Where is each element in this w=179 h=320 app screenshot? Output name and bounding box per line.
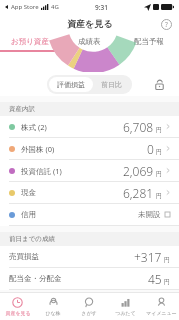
button[interactable]: つみたて [107,293,143,320]
staticText: 未開設 [138,210,161,219]
staticText: 資産を見る [5,310,31,316]
button[interactable]: 配当金・分配金 [0,268,179,290]
button[interactable]: 外国株 (0) [0,138,179,160]
button[interactable]: さがす [71,293,107,320]
staticText: 円 [156,170,162,178]
button[interactable]: 株式 (2) [0,116,179,138]
button[interactable]: 信用 [0,204,179,226]
staticText: 0 [147,141,154,157]
staticText: さがす [81,310,97,316]
staticText: 売買損益 [9,252,39,261]
staticText: 配当予報 [134,37,164,46]
staticText: 円 [156,126,162,134]
staticText: +317 [134,249,162,265]
button[interactable]: ひな株 [35,293,71,320]
staticText: マイメニュー [146,310,177,316]
staticText: 資産を見る [67,18,113,29]
button[interactable]: マイメニュー [143,293,179,320]
button[interactable]: 投資信託 (1) [0,160,179,182]
staticText: 信用 [21,210,36,219]
button[interactable]: お預り資産 [0,33,59,50]
staticText: お預り資産 [11,37,49,46]
button[interactable]: 表示ロック [151,76,167,92]
staticText: 成績表 [78,37,101,46]
staticText: 外国株 (0) [21,144,55,154]
staticText: 資産内訳 [9,105,35,113]
button[interactable]: 成績表 [59,33,119,50]
staticText: 6,708 [123,119,154,135]
button[interactable]: 現金 [0,182,179,204]
staticText: ? [165,20,168,29]
staticText: 9:31 [95,3,108,12]
button[interactable]: 配当予報 [119,33,179,50]
staticText: 2,069 [123,163,154,179]
staticText: 配当金・分配金 [9,274,62,283]
staticText: 45 [148,271,162,287]
staticText: つみたて [115,310,136,316]
button[interactable]: 評価損益 [57,80,85,89]
staticText: 株式 (2) [21,122,47,132]
staticText: 現金 [21,188,36,197]
staticText: ひな株 [45,310,61,316]
staticText: 円 [156,192,162,200]
button[interactable]: 資産を見る [0,293,35,320]
staticText: 投資信託 (1) [21,166,62,176]
button[interactable]: 前日比 [101,80,122,89]
staticText: 円 [164,256,170,264]
staticText: 前日比 [101,80,122,89]
staticText: 円 [164,278,170,286]
staticText: 6,281 [123,185,154,201]
staticText: 円 [156,148,162,156]
staticText: 前日までの成績 [9,235,55,243]
button[interactable]: ヘルプ [159,17,173,31]
staticText: 4G [51,3,59,11]
staticText: App Store [11,3,39,11]
staticText: 評価損益 [57,80,85,89]
button[interactable]: 売買損益 [0,246,179,268]
